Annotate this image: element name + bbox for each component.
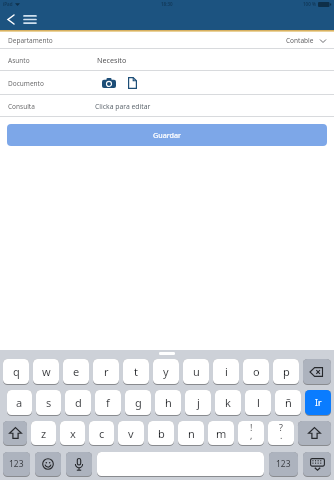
staticText: Asunto xyxy=(8,56,30,65)
staticText: u xyxy=(193,364,200,379)
staticText: t xyxy=(134,364,138,379)
button[interactable]: Ir xyxy=(305,390,331,416)
button[interactable]: l xyxy=(245,390,271,416)
button[interactable]: Asunto xyxy=(0,49,334,71)
button[interactable]: f xyxy=(95,390,121,416)
staticText: n xyxy=(188,426,195,441)
staticText: z xyxy=(41,426,47,441)
button[interactable]: c xyxy=(89,421,114,446)
staticText: . xyxy=(280,429,283,441)
button[interactable]: ñ xyxy=(275,390,301,416)
button[interactable]: x xyxy=(60,421,85,446)
button[interactable]: m xyxy=(208,421,234,446)
staticText: h xyxy=(165,395,172,410)
button[interactable]: o xyxy=(243,359,269,385)
staticText: v xyxy=(128,426,134,441)
staticText: 100 % xyxy=(303,1,316,7)
staticText: ? xyxy=(279,421,283,433)
button[interactable]: a xyxy=(7,390,32,416)
staticText: f xyxy=(106,395,110,410)
button[interactable]: k xyxy=(215,390,241,416)
staticText: ñ xyxy=(285,395,292,410)
staticText: q xyxy=(13,364,20,379)
button[interactable]: n xyxy=(178,421,204,446)
button[interactable]: 123 xyxy=(3,452,30,477)
button[interactable]: ! xyxy=(238,421,264,446)
staticText: c xyxy=(99,426,105,441)
staticText: w xyxy=(42,364,51,379)
staticText: x xyxy=(70,426,76,441)
staticText: k xyxy=(225,395,231,410)
button[interactable]: p xyxy=(273,359,299,385)
staticText: m xyxy=(216,426,227,441)
staticText: s xyxy=(46,395,52,410)
button[interactable]: e xyxy=(63,359,89,385)
button[interactable]: y xyxy=(153,359,179,385)
staticText: l xyxy=(257,395,260,410)
staticText: a xyxy=(16,395,23,410)
button[interactable]: g xyxy=(125,390,151,416)
button[interactable] xyxy=(35,452,61,477)
staticText: 18:30 xyxy=(161,1,173,7)
button[interactable]: i xyxy=(213,359,239,385)
button[interactable] xyxy=(303,359,331,385)
button[interactable]: r xyxy=(93,359,119,385)
button[interactable]: j xyxy=(185,390,211,416)
staticText: Departamento xyxy=(8,36,53,45)
staticText: j xyxy=(197,395,200,410)
staticText: , xyxy=(250,429,253,441)
staticText: Ir xyxy=(315,397,322,409)
button[interactable]: z xyxy=(31,421,56,446)
button[interactable]: b xyxy=(148,421,174,446)
staticText: Documento xyxy=(8,79,44,88)
staticText: 123 xyxy=(276,458,291,470)
button[interactable]: d xyxy=(65,390,91,416)
button[interactable]: ? xyxy=(268,421,294,446)
staticText: d xyxy=(75,395,82,410)
staticText: Necesito xyxy=(97,55,127,65)
staticText: e xyxy=(73,364,80,379)
button[interactable]: t xyxy=(123,359,149,385)
staticText: ! xyxy=(250,421,253,433)
staticText: o xyxy=(253,364,260,379)
staticText: Consulta xyxy=(8,102,35,111)
button[interactable] xyxy=(66,452,92,477)
button[interactable]: w xyxy=(33,359,59,385)
staticText: iPad xyxy=(3,1,13,7)
staticText: Contable xyxy=(286,36,314,45)
staticText: Guardar xyxy=(153,130,181,140)
button[interactable]: s xyxy=(36,390,61,416)
staticText: y xyxy=(163,364,169,379)
button[interactable] xyxy=(126,76,139,90)
staticText: r xyxy=(104,364,109,379)
staticText: p xyxy=(283,364,290,379)
button[interactable]: q xyxy=(3,359,29,385)
button[interactable]: Guardar xyxy=(7,124,327,146)
button[interactable] xyxy=(298,421,331,446)
button[interactable]: u xyxy=(183,359,209,385)
staticText: g xyxy=(135,395,142,410)
button[interactable]: Departamento xyxy=(0,32,334,49)
staticText: 123 xyxy=(9,458,24,470)
button[interactable]: Consulta xyxy=(0,95,334,117)
button[interactable] xyxy=(3,421,27,446)
staticText: b xyxy=(158,426,165,441)
button[interactable]: 123 xyxy=(269,452,298,477)
staticText: Clicka para editar xyxy=(95,102,151,111)
button[interactable] xyxy=(97,452,264,477)
button[interactable]: v xyxy=(118,421,144,446)
button[interactable] xyxy=(101,76,117,90)
staticText: i xyxy=(225,364,228,379)
button[interactable] xyxy=(5,11,17,27)
button[interactable]: h xyxy=(155,390,181,416)
button[interactable] xyxy=(303,452,331,477)
button[interactable] xyxy=(22,11,38,27)
